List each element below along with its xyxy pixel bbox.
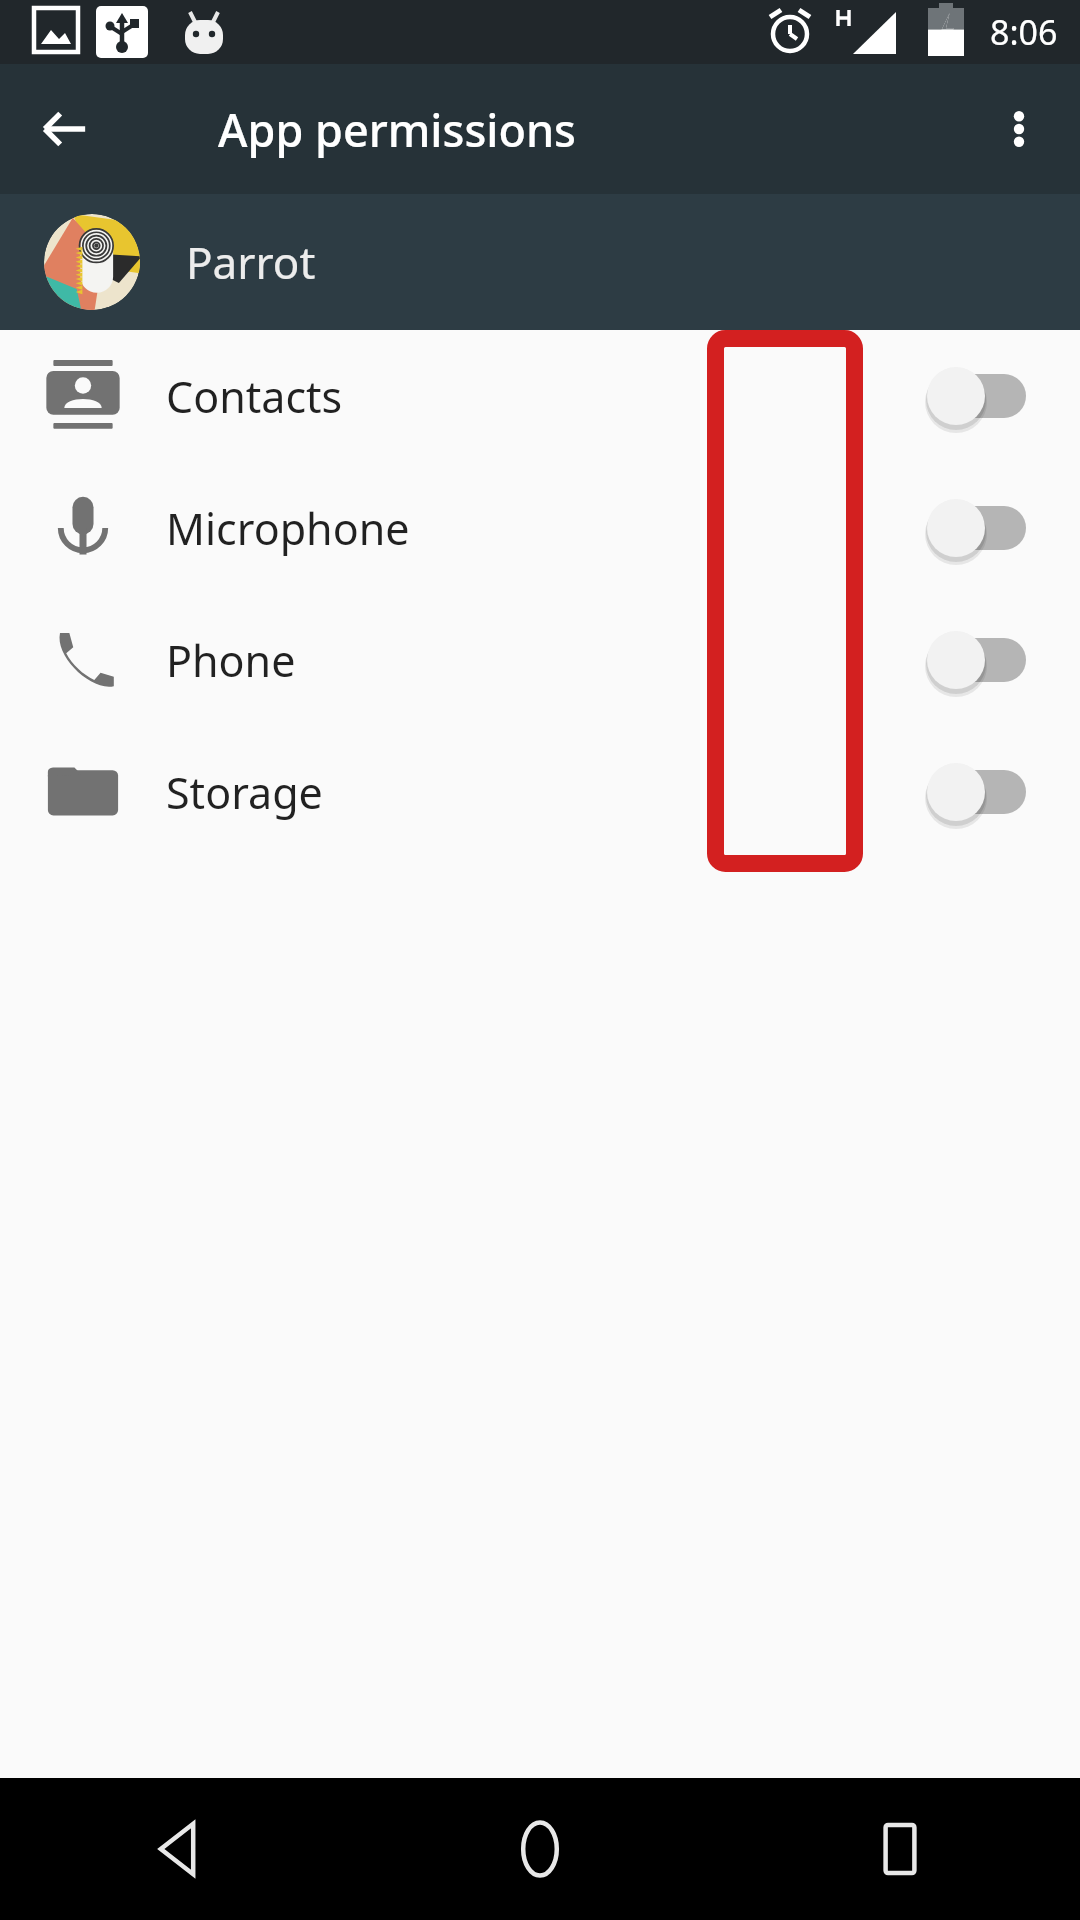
button[interactable]: Storage bbox=[0, 726, 1080, 858]
button[interactable]: More options bbox=[974, 84, 1064, 174]
button[interactable]: Toggle permission bbox=[920, 620, 1040, 700]
button[interactable]: Back bbox=[0, 1778, 360, 1920]
button[interactable]: Microphone bbox=[0, 462, 1080, 594]
button[interactable]: Phone bbox=[0, 594, 1080, 726]
staticText: Microphone bbox=[166, 499, 410, 558]
staticText: Contacts bbox=[166, 367, 343, 426]
button[interactable]: Toggle permission bbox=[920, 356, 1040, 436]
staticText: 8:06 bbox=[990, 9, 1058, 55]
button[interactable]: Recents bbox=[720, 1778, 1080, 1920]
staticText: App permissions bbox=[218, 99, 576, 160]
staticText: Storage bbox=[166, 763, 323, 822]
button[interactable]: Toggle permission bbox=[920, 488, 1040, 568]
staticText: Parrot bbox=[186, 232, 316, 292]
staticText: Phone bbox=[166, 631, 296, 690]
button[interactable]: Home bbox=[360, 1778, 720, 1920]
button[interactable]: Contacts bbox=[0, 330, 1080, 462]
button[interactable]: Toggle permission bbox=[920, 752, 1040, 832]
button[interactable]: Back bbox=[20, 84, 110, 174]
